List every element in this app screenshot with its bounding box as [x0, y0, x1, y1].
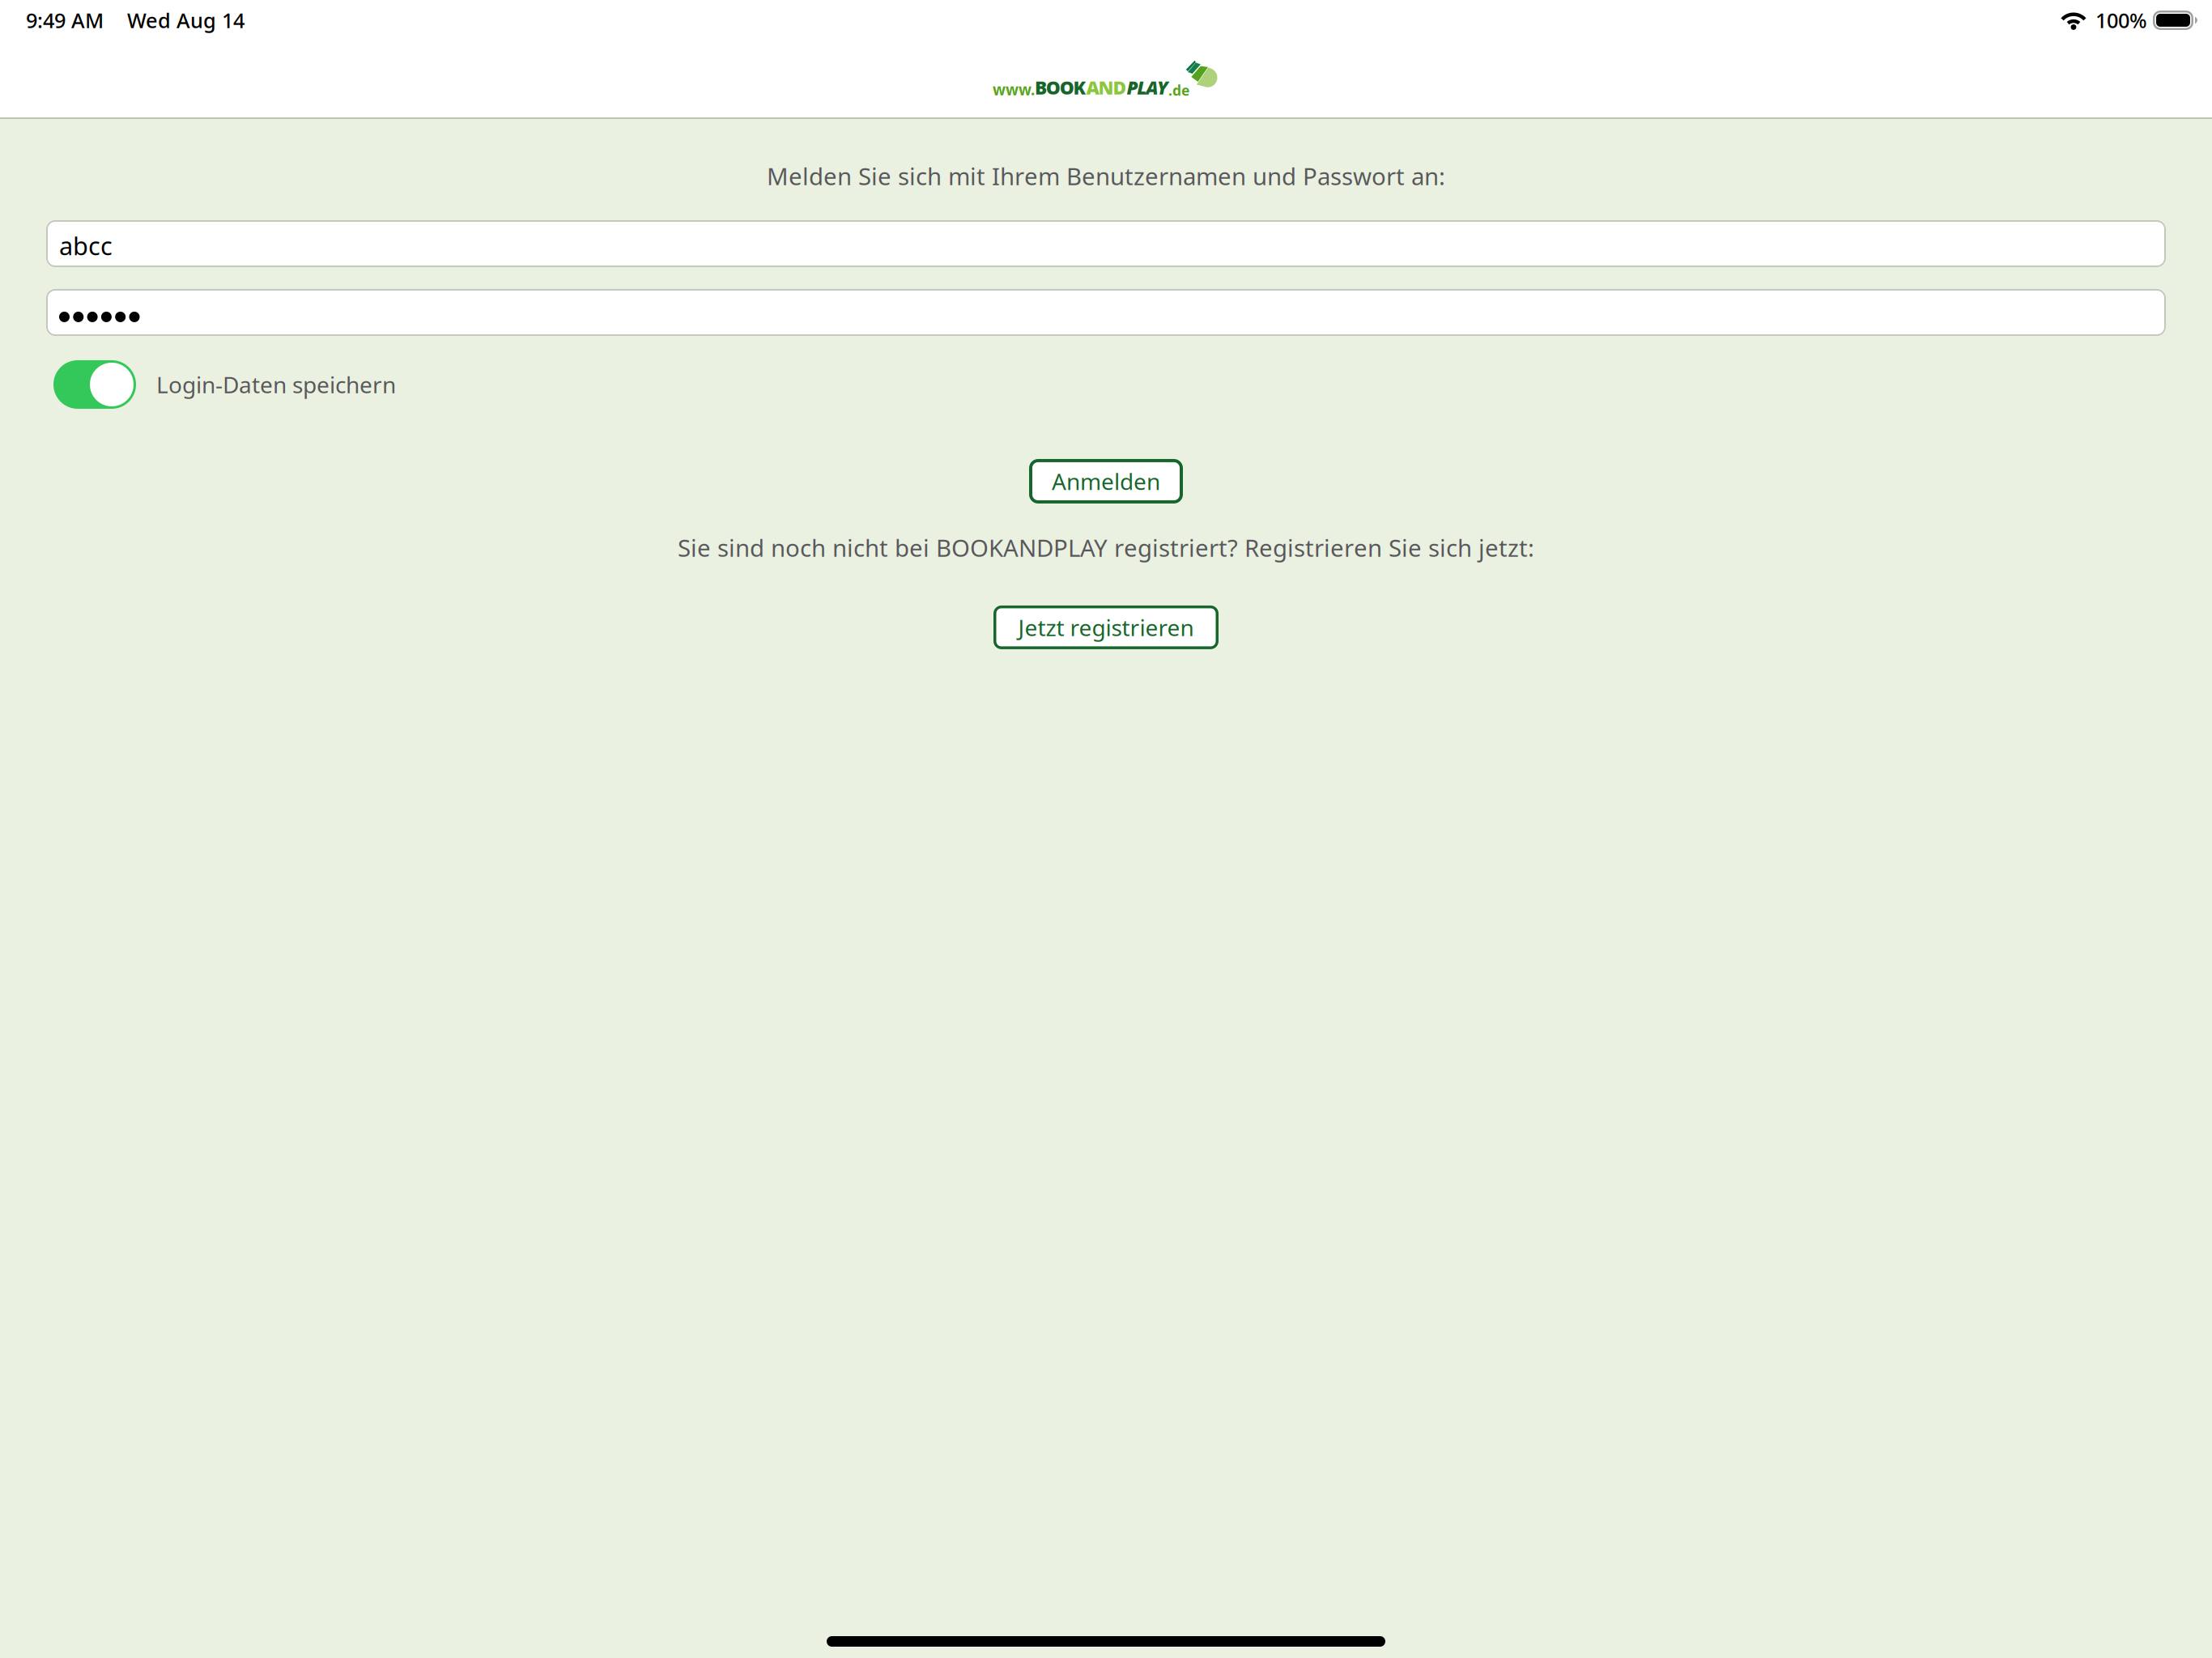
staticText: Jetzt registrieren: [1018, 612, 1194, 642]
staticText: 9:49 AM: [26, 7, 104, 34]
staticText: .de: [1168, 81, 1189, 100]
staticText: BOOK: [1035, 75, 1086, 100]
staticText: Login-Daten speichern: [156, 369, 396, 400]
staticText: Melden Sie sich mit Ihrem Benutzernamen …: [767, 160, 1445, 192]
staticText: www.: [993, 79, 1035, 100]
staticText: abcc: [59, 229, 113, 262]
staticText: AND: [1086, 75, 1127, 100]
staticText: PLAY: [1127, 75, 1168, 100]
staticText: Wed Aug 14: [127, 7, 245, 34]
staticText: Sie sind noch nicht bei BOOKANDPLAY regi…: [678, 532, 1534, 563]
staticText: Anmelden: [1052, 466, 1160, 496]
button[interactable]: Login-Daten speichern: [53, 360, 136, 409]
button[interactable]: Anmelden: [1029, 459, 1183, 504]
staticText: 100%: [2095, 7, 2147, 34]
button[interactable]: Jetzt registrieren: [993, 605, 1219, 649]
